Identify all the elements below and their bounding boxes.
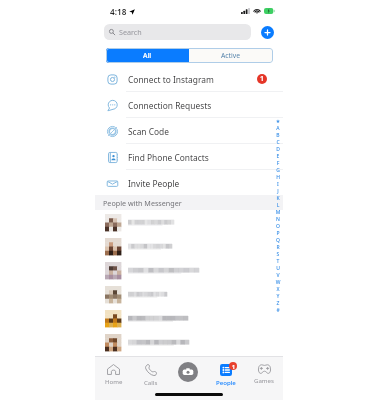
staticText: Scan Code — [128, 126, 169, 137]
button[interactable] — [95, 210, 283, 234]
staticText: Home — [105, 377, 123, 385]
button[interactable]: Games — [245, 357, 283, 387]
staticText: T — [274, 258, 282, 265]
staticText: O — [274, 223, 282, 230]
staticText: I — [274, 181, 282, 188]
button[interactable] — [95, 306, 283, 330]
button[interactable] — [95, 282, 283, 306]
button[interactable] — [95, 330, 283, 354]
staticText: 1 — [232, 363, 235, 370]
staticText: Z — [274, 300, 282, 307]
button[interactable]: Active — [189, 48, 273, 63]
staticText: Y — [274, 293, 282, 300]
button[interactable]: Search — [104, 24, 251, 40]
staticText: People — [216, 378, 236, 386]
button[interactable]: 1 — [207, 357, 245, 387]
staticText: C — [274, 139, 282, 146]
staticText: S — [274, 251, 282, 258]
staticText: J — [274, 188, 282, 195]
button[interactable]: Invite People — [95, 170, 283, 196]
staticText: G — [274, 167, 282, 174]
staticText: All — [143, 51, 152, 60]
staticText: Find Phone Contacts — [128, 152, 209, 163]
button[interactable]: Connection Requests — [95, 92, 283, 118]
staticText: H — [274, 174, 282, 181]
staticText: Active — [221, 51, 241, 60]
staticText: L — [274, 202, 282, 209]
staticText: ★ — [274, 118, 282, 125]
staticText: Invite People — [128, 178, 180, 189]
staticText: R — [274, 244, 282, 251]
staticText: W — [274, 279, 282, 286]
staticText: U — [274, 265, 282, 272]
button[interactable]: Camera — [178, 362, 198, 382]
staticText: F — [274, 160, 282, 167]
staticText: P — [274, 230, 282, 237]
button[interactable]: Find Phone Contacts — [95, 144, 283, 170]
staticText: Games — [254, 376, 274, 384]
staticText: E — [274, 153, 282, 160]
staticText: People with Messenger — [103, 198, 182, 208]
button[interactable]: Scan Code — [95, 118, 283, 144]
button[interactable]: Connect to Instagram — [95, 66, 283, 92]
staticText: M — [274, 209, 282, 216]
button[interactable]: New message — [261, 26, 274, 39]
staticText: B — [274, 132, 282, 139]
staticText: D — [274, 146, 282, 153]
staticText: # — [274, 307, 282, 314]
staticText: 4:18 — [110, 6, 127, 17]
button[interactable] — [95, 258, 283, 282]
staticText: Calls — [144, 378, 158, 386]
staticText: K — [274, 195, 282, 202]
button[interactable]: Home — [95, 357, 132, 387]
staticText: N — [274, 216, 282, 223]
button[interactable]: Calls — [132, 357, 169, 387]
staticText: Search — [119, 27, 142, 37]
staticText: Connection Requests — [128, 100, 212, 111]
button[interactable] — [95, 234, 283, 258]
staticText: X — [274, 286, 282, 293]
staticText: A — [274, 125, 282, 132]
button[interactable]: All — [106, 48, 189, 63]
staticText: Connect to Instagram — [128, 74, 214, 85]
staticText: 1 — [260, 74, 265, 84]
staticText: V — [274, 272, 282, 279]
staticText: Q — [274, 237, 282, 244]
